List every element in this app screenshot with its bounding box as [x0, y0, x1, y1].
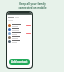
button[interactable] [8, 35, 31, 39]
staticText: Keep all your family connected on mobile [18, 2, 47, 9]
staticText: Add contact [11, 60, 28, 64]
button[interactable]: Add contact [9, 59, 30, 65]
button[interactable] [8, 27, 31, 31]
button[interactable] [8, 23, 31, 27]
button[interactable] [8, 31, 31, 35]
button[interactable] [8, 39, 31, 43]
